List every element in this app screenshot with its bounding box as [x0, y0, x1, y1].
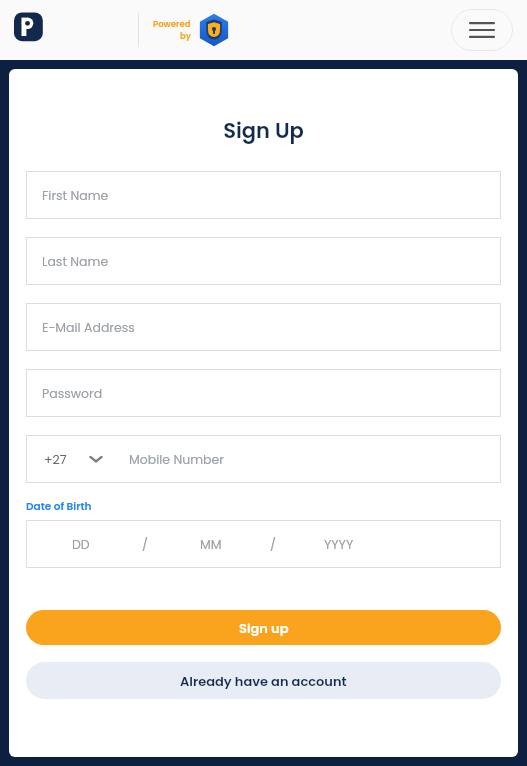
button[interactable]: Menu	[451, 9, 513, 51]
staticText: E-Mail Address	[42, 319, 135, 336]
button[interactable]: Last Name	[26, 237, 501, 285]
staticText: First Name	[42, 187, 109, 204]
button[interactable]: DD	[26, 520, 501, 568]
staticText: by	[180, 30, 191, 42]
button[interactable]: +27	[26, 435, 115, 483]
button[interactable]: Already have an account	[26, 662, 501, 699]
staticText: Password	[42, 385, 103, 402]
button[interactable]: Password	[26, 369, 501, 417]
staticText: Sign Up	[26, 116, 501, 145]
staticText: Already have an account	[180, 672, 347, 690]
button[interactable]: E-Mail Address	[26, 303, 501, 351]
staticText: /	[142, 536, 148, 553]
staticText: YYYY	[324, 536, 354, 553]
staticText: Sign up	[239, 619, 289, 637]
staticText: DD	[72, 536, 90, 553]
staticText: +27	[44, 451, 67, 468]
staticText: Mobile Number	[129, 451, 224, 468]
staticText: MM	[200, 536, 222, 553]
staticText: /	[270, 536, 276, 553]
staticText: Last Name	[42, 253, 109, 270]
button[interactable]: First Name	[26, 171, 501, 219]
button[interactable]: Sign up	[26, 610, 501, 645]
staticText: Date of Birth	[26, 499, 92, 514]
staticText: Powered	[153, 18, 191, 30]
